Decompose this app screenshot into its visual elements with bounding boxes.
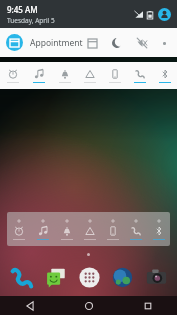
button[interactable]: BT — [147, 212, 170, 246]
button[interactable]: TRIANGLE — [78, 212, 101, 246]
button[interactable]: ALARM — [7, 212, 31, 246]
button[interactable]: PHONEBOX — [102, 62, 127, 89]
button[interactable]: Camera — [143, 264, 169, 290]
button[interactable]: BT — [152, 62, 177, 89]
button[interactable]: Back — [0, 296, 59, 315]
button[interactable]: ALARM — [0, 62, 26, 89]
button[interactable]: Do not disturb — [109, 35, 125, 51]
button[interactable]: Home — [59, 296, 118, 315]
button[interactable]: Browser — [109, 264, 135, 290]
staticText: Appointment — [30, 37, 83, 49]
button[interactable]: Mute — [134, 35, 150, 51]
button[interactable]: More options — [157, 36, 171, 50]
button[interactable]: Messages — [42, 264, 68, 290]
button[interactable]: CALL — [127, 62, 152, 89]
button[interactable]: MUSIC — [26, 62, 52, 89]
button[interactable]: MUSIC — [31, 212, 55, 246]
button[interactable]: PHONEBOX — [101, 212, 124, 246]
button[interactable]: BELL — [55, 212, 78, 246]
staticText: Tuesday, April 5 — [7, 16, 55, 25]
staticText: 9:45 AM — [7, 4, 38, 15]
button[interactable]: All apps — [76, 264, 102, 290]
button[interactable]: Phone — [8, 264, 34, 290]
button[interactable]: TRIANGLE — [77, 62, 102, 89]
button[interactable]: BELL — [52, 62, 77, 89]
button[interactable]: CALL — [124, 212, 147, 246]
button[interactable]: Account — [158, 8, 171, 21]
button[interactable]: Calendar — [84, 35, 100, 51]
button[interactable]: Recents — [118, 296, 177, 315]
button[interactable]: Appointment — [0, 28, 177, 57]
